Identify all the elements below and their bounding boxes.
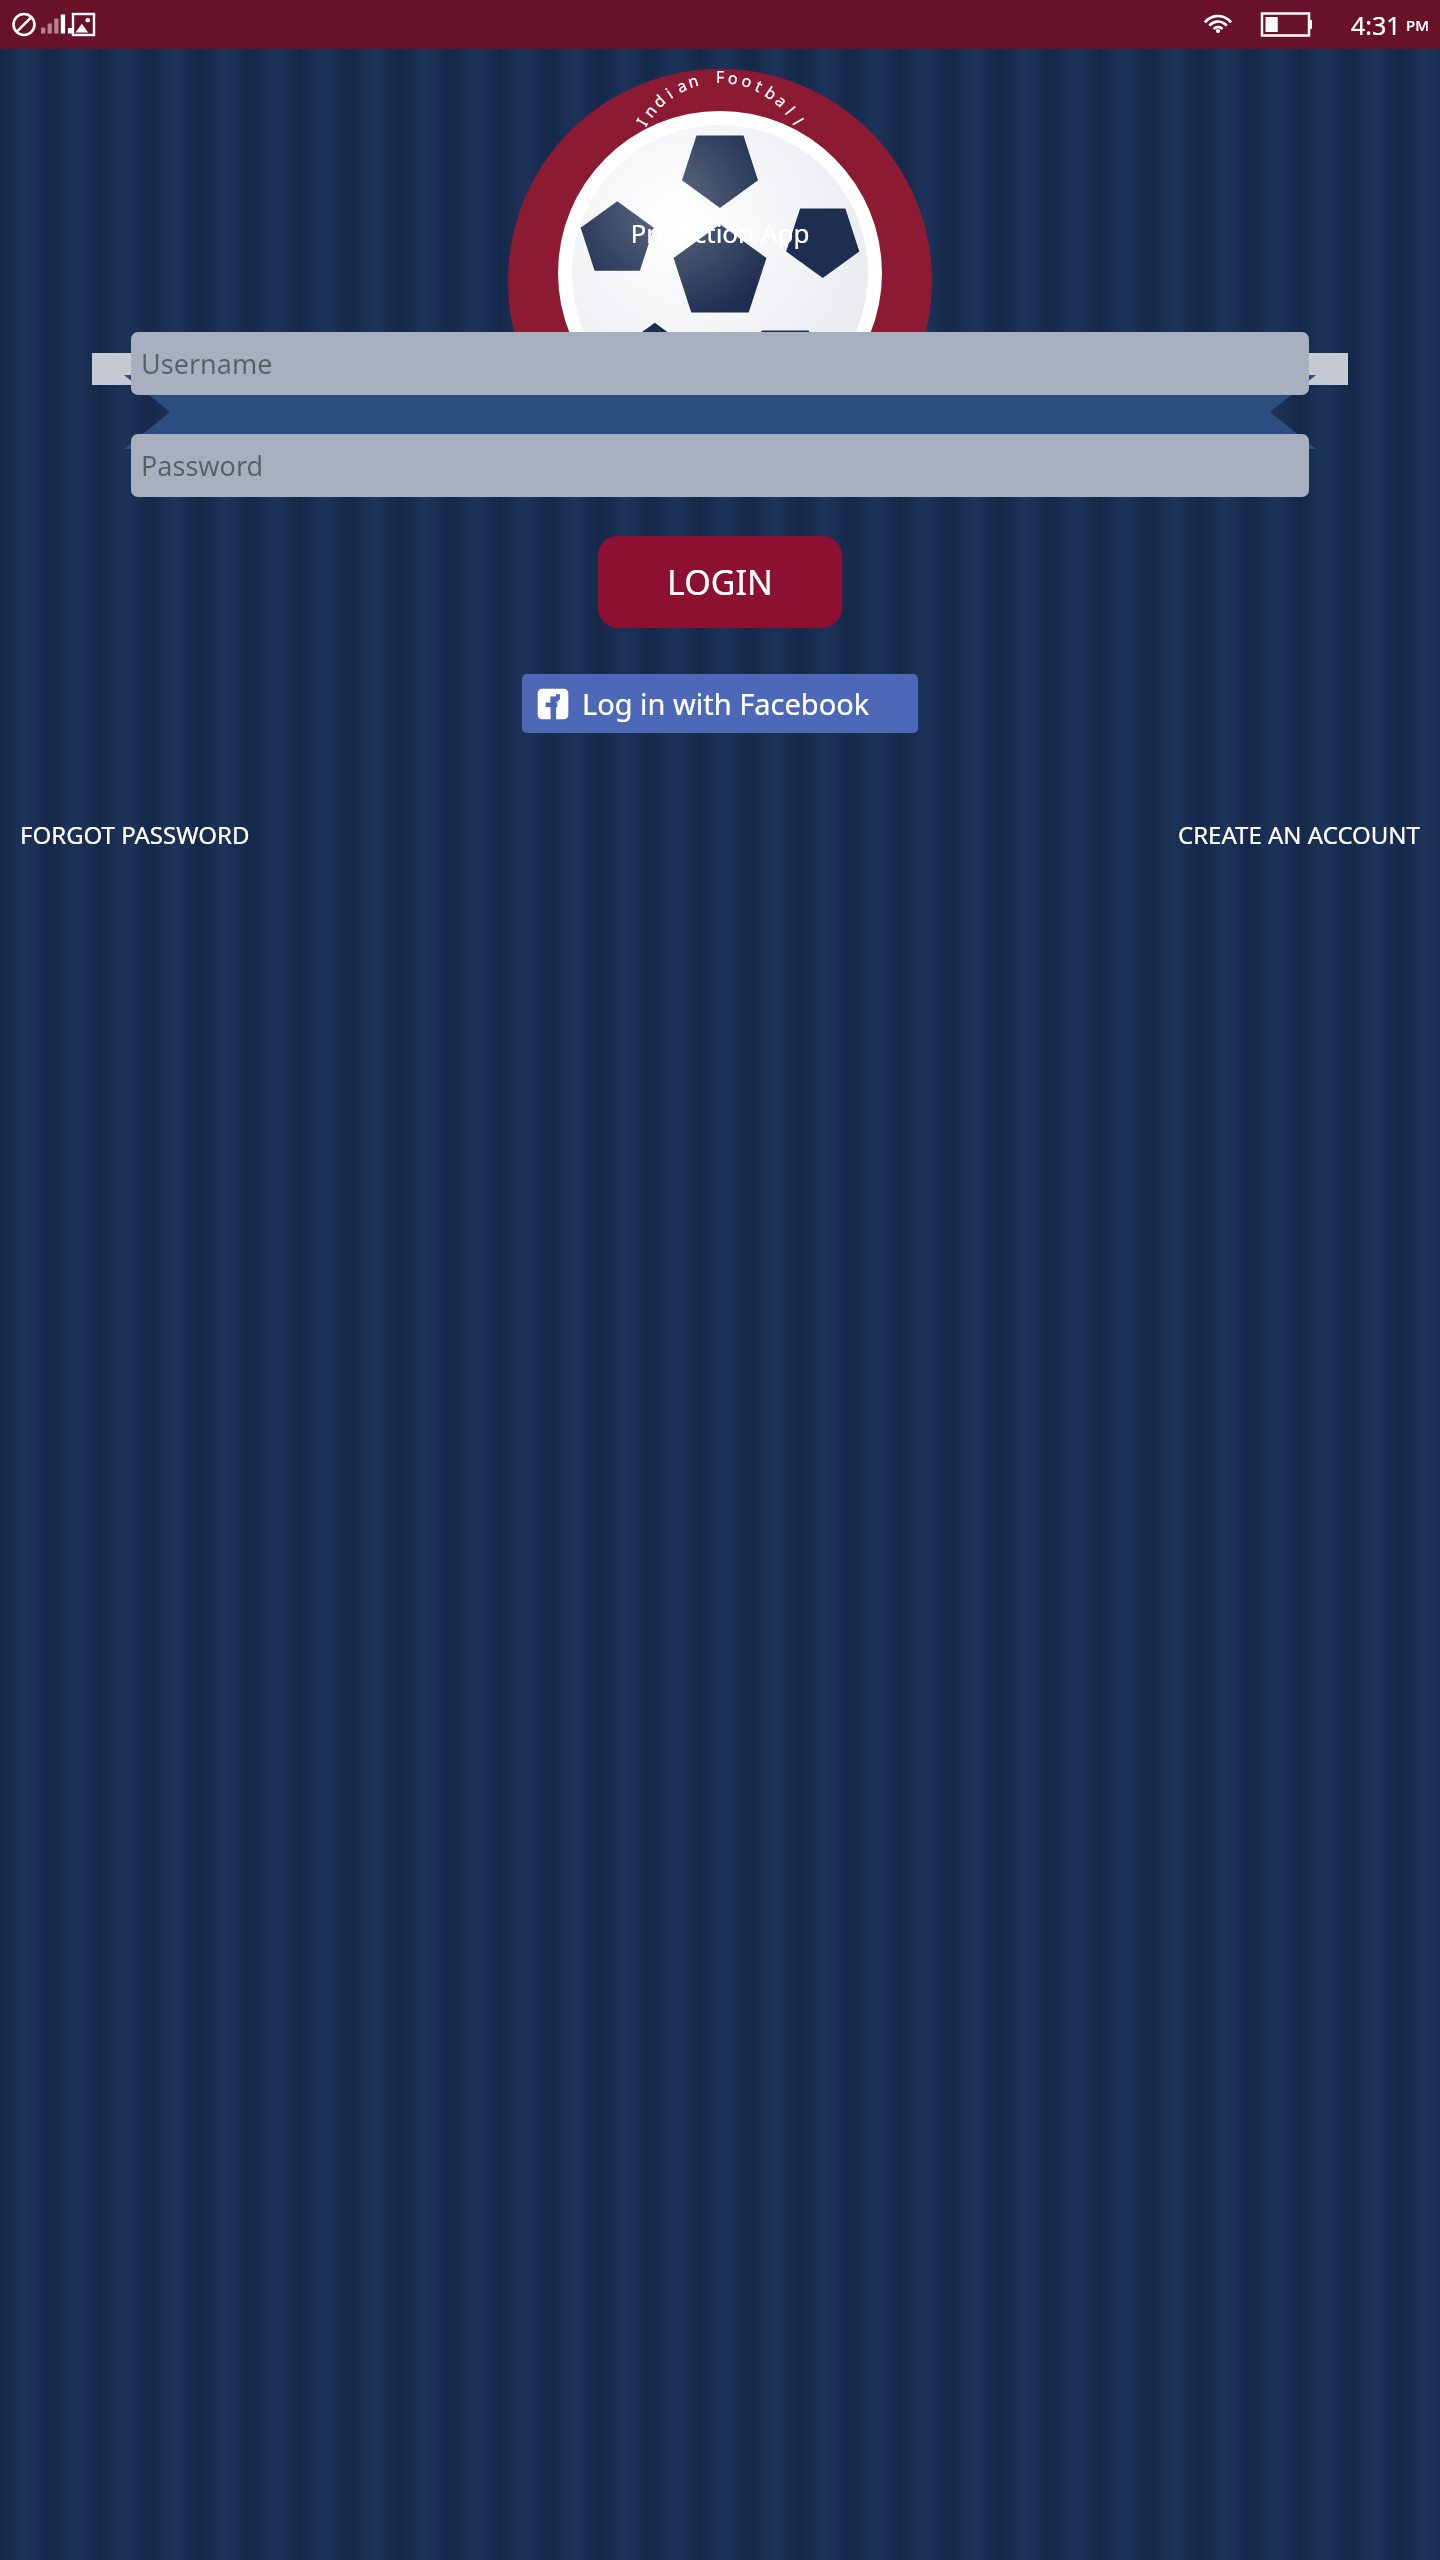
staticText: Username	[141, 345, 273, 382]
staticText	[703, 67, 712, 89]
button[interactable]: Facebook logo	[522, 674, 918, 733]
button[interactable]: LOGIN	[598, 536, 842, 628]
staticText: a	[771, 90, 792, 112]
staticText: LOGIN	[667, 559, 773, 605]
staticText: n	[685, 69, 701, 93]
staticText: a	[673, 74, 690, 98]
staticText: FORGOT PASSWORD	[20, 818, 250, 851]
staticText: Log in with Facebook	[582, 684, 870, 723]
staticText: d	[648, 89, 670, 112]
button[interactable]: Username	[131, 332, 1309, 395]
staticText: CREATE AN ACCOUNT	[1178, 818, 1420, 851]
staticText: i	[661, 82, 678, 103]
staticText: Password	[141, 447, 264, 484]
button[interactable]: CREATE AN ACCOUNT	[1174, 810, 1424, 859]
staticText: n	[638, 100, 662, 122]
other: Facebook logo	[536, 687, 570, 721]
staticText: Prediction App	[630, 215, 810, 250]
staticText: PM	[1406, 15, 1429, 35]
staticText: t	[751, 75, 766, 97]
staticText: o	[726, 66, 740, 90]
button[interactable]: Password	[131, 434, 1309, 497]
staticText: F	[716, 66, 725, 88]
staticText: o	[739, 69, 755, 93]
staticText: 4:31	[1351, 8, 1401, 42]
staticText: l	[788, 114, 809, 130]
button[interactable]: FORGOT PASSWORD	[16, 810, 254, 859]
staticText: b	[761, 81, 781, 105]
staticText: I	[631, 114, 653, 130]
staticText: l	[780, 102, 801, 120]
